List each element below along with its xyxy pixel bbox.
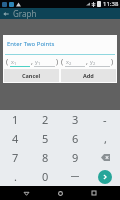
button[interactable]: Enter bbox=[98, 170, 112, 184]
button[interactable]: - bbox=[90, 110, 120, 129]
staticText: 5 bbox=[42, 131, 49, 146]
staticText: , bbox=[86, 57, 88, 67]
button[interactable]: 8 bbox=[30, 148, 60, 167]
button[interactable]: 6 bbox=[60, 129, 90, 148]
staticText: 6 bbox=[72, 131, 79, 146]
staticText: 1 bbox=[12, 112, 19, 127]
staticText: y bbox=[35, 58, 38, 65]
staticText: 3 bbox=[72, 112, 79, 127]
staticText: 4 bbox=[12, 131, 19, 146]
staticText: Cancel bbox=[22, 72, 41, 79]
button[interactable]: 2 bbox=[30, 110, 60, 129]
button[interactable]: x bbox=[10, 58, 30, 67]
staticText: x bbox=[11, 58, 14, 65]
staticText: 9 bbox=[72, 150, 79, 165]
staticText: . bbox=[14, 169, 17, 184]
button[interactable]: Backspace bbox=[90, 148, 120, 167]
button[interactable]: 4 bbox=[0, 129, 30, 148]
button[interactable]: Space bbox=[60, 167, 90, 186]
button[interactable]: , bbox=[90, 129, 120, 148]
staticText: - bbox=[103, 112, 107, 127]
staticText: x bbox=[66, 58, 69, 65]
staticText: 11:38 bbox=[103, 0, 119, 8]
staticText: ( bbox=[61, 57, 64, 67]
staticText: 1 bbox=[38, 61, 41, 66]
staticText: y bbox=[90, 58, 93, 65]
button[interactable]: Enter bbox=[90, 167, 120, 186]
staticText: 1 bbox=[14, 61, 17, 66]
button[interactable]: Home bbox=[53, 186, 67, 200]
staticText: 8 bbox=[42, 150, 49, 165]
button[interactable]: 5 bbox=[30, 129, 60, 148]
staticText: 0 bbox=[42, 169, 49, 184]
staticText: 7 bbox=[12, 150, 19, 165]
staticText: , bbox=[104, 131, 107, 146]
staticText: Graph bbox=[13, 8, 37, 19]
staticText: 2 bbox=[42, 112, 49, 127]
staticText: ( bbox=[6, 57, 9, 67]
button[interactable]: . bbox=[0, 167, 30, 186]
button[interactable]: Navigate up bbox=[0, 8, 11, 19]
button[interactable]: Back bbox=[19, 186, 33, 200]
staticText: 2 bbox=[69, 61, 72, 66]
button[interactable]: y bbox=[34, 58, 55, 67]
staticText: ) bbox=[56, 57, 59, 67]
button[interactable]: y bbox=[89, 58, 110, 67]
button[interactable]: 1 bbox=[0, 110, 30, 129]
button[interactable]: Recents bbox=[87, 186, 101, 200]
other: Backspace bbox=[101, 154, 110, 161]
button[interactable]: 0 bbox=[30, 167, 60, 186]
staticText: 2 bbox=[93, 61, 96, 66]
button[interactable]: x bbox=[65, 58, 85, 67]
staticText: Add bbox=[83, 72, 94, 79]
button[interactable]: Add bbox=[61, 69, 116, 82]
staticText: , bbox=[31, 57, 33, 67]
button[interactable]: 7 bbox=[0, 148, 30, 167]
staticText: Enter Two Points bbox=[7, 40, 55, 48]
staticText: ) bbox=[111, 57, 114, 67]
button[interactable]: 9 bbox=[60, 148, 90, 167]
button[interactable]: Cancel bbox=[4, 69, 59, 82]
button[interactable]: 3 bbox=[60, 110, 90, 129]
